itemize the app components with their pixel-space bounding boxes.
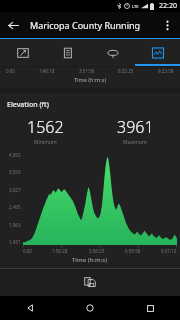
staticText: 1562 (27, 116, 64, 138)
staticText: 3,027 (9, 187, 21, 193)
button[interactable]: Charts (135, 39, 180, 66)
button[interactable]: Recents (120, 296, 180, 320)
staticText: 6:59:58 (125, 248, 141, 254)
button[interactable]: Elevation (ft) (0, 93, 180, 268)
staticText: Time (h:m:s) (74, 76, 107, 83)
staticText: 1,963 (9, 222, 21, 228)
staticText: 2,495 (9, 204, 21, 210)
button[interactable]: More options (154, 12, 180, 38)
staticText: LTE (132, 4, 139, 9)
staticText: 0:00 (6, 68, 15, 74)
staticText: 1:56:28 (52, 248, 68, 254)
button[interactable]: Home (60, 296, 120, 320)
staticText: Time (h:m:s) (72, 256, 108, 264)
staticText: 9:37:12 (161, 248, 177, 254)
staticText: Minimum (34, 139, 57, 146)
button[interactable]: Laps (90, 39, 135, 66)
staticText: 3:56:23 (89, 248, 105, 254)
button[interactable]: Back (0, 12, 26, 38)
staticText: 22:20 (159, 1, 177, 11)
staticText: Maximum (123, 139, 147, 146)
staticText: 6:52:25 (118, 68, 134, 74)
staticText: Maricopa County Running (30, 19, 154, 31)
staticText: 9:23:58 (158, 68, 174, 74)
staticText: 3,559 (9, 169, 21, 175)
button[interactable]: Save (78, 270, 102, 294)
staticText: 1:48:10 (39, 68, 55, 74)
button[interactable]: Details (45, 39, 90, 66)
staticText: Elevation (ft) (7, 100, 49, 110)
staticText: 0:00 (23, 248, 32, 254)
button[interactable]: Map (0, 39, 45, 66)
staticText: 1,431 (9, 239, 21, 245)
button[interactable]: Back (0, 296, 60, 320)
staticText: 4,092 (9, 152, 21, 158)
staticText: 3961 (117, 116, 154, 138)
staticText: 3:51:56 (79, 68, 95, 74)
